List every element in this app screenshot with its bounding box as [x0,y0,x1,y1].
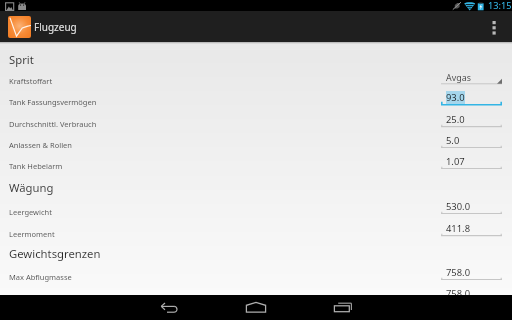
staticText: 25.0 [446,113,465,126]
staticText: Avgas [446,71,471,83]
staticText: Wägung [9,180,54,195]
staticText: Anlassen & Rollen [9,140,72,150]
button[interactable]: 25.0 [441,113,502,129]
staticText: Leergewicht [9,207,52,217]
button[interactable]: Tank Hebelarm [0,153,512,174]
staticText: 13:15 [488,0,512,10]
staticText: Durchschnittl. Verbrauch [9,119,97,129]
button[interactable]: 758.0 [441,287,502,303]
button[interactable]: App icon [8,16,31,38]
button[interactable]: 5.0 [441,134,502,150]
staticText: Flugzeug [34,20,77,34]
button[interactable]: 411.8 [441,222,502,238]
staticText: 93.0 [446,91,465,104]
staticText: Tank Fassungsvermögen [9,97,97,107]
staticText: Sprit [9,52,34,67]
button[interactable]: 758.0 [441,266,502,282]
button[interactable]: Tank Fassungsvermögen [0,89,512,110]
button[interactable]: 530.0 [441,200,502,216]
button[interactable]: Kraftstoffart [0,68,512,89]
button[interactable]: Home [239,295,273,320]
button[interactable]: Back [152,295,186,320]
staticText: Kraftstoffart [9,76,53,86]
button[interactable]: 1.07 [441,155,502,171]
staticText: Max Abflugmasse [9,272,72,282]
staticText: 5.0 [446,134,460,147]
button[interactable]: Durchschnittl. Verbrauch [0,111,512,132]
staticText: Gewichtsgrenzen [9,246,101,261]
staticText: Leermoment [9,229,55,239]
button[interactable]: Leergewicht [0,199,512,220]
button[interactable]: Recent apps [326,295,360,320]
staticText: Tank Hebelarm [9,161,63,171]
button[interactable]: Avgas [441,71,502,87]
button[interactable]: Anlassen & Rollen [0,132,512,153]
button[interactable]: Max Abflugmasse [0,264,512,285]
staticText: 530.0 [446,200,471,213]
button[interactable]: 758.0 [0,285,512,306]
button[interactable]: Leermoment [0,221,512,242]
staticText: 411.8 [446,222,471,235]
staticText: 758.0 [446,287,471,300]
button[interactable]: 93.0 [441,91,502,107]
staticText: 758.0 [446,266,471,279]
button[interactable]: More options [483,11,505,42]
staticText: 1.07 [446,155,465,168]
